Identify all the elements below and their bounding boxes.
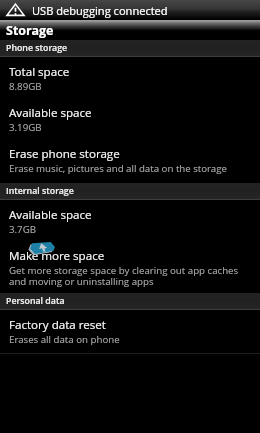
button[interactable]: Available space bbox=[0, 98, 260, 139]
staticText: Internal storage bbox=[6, 185, 74, 197]
staticText: 8.89GB bbox=[9, 80, 42, 93]
staticText: Get more storage space by clearing out a… bbox=[9, 264, 248, 288]
staticText: 3.7GB bbox=[9, 223, 36, 236]
staticText: Erases all data on phone bbox=[9, 333, 120, 346]
staticText: Make more space bbox=[9, 248, 105, 264]
button[interactable]: Factory data reset bbox=[0, 310, 260, 353]
staticText: Total space bbox=[9, 64, 70, 80]
staticText: USB debugging connected bbox=[32, 3, 168, 18]
staticText: Storage bbox=[6, 22, 54, 39]
staticText: Factory data reset bbox=[9, 317, 106, 333]
staticText: Erase music, pictures and all data on th… bbox=[9, 162, 227, 175]
button[interactable]: Make more space bbox=[0, 241, 260, 293]
staticText: Erase phone storage bbox=[9, 146, 120, 162]
button[interactable]: Available space bbox=[0, 200, 260, 241]
staticText: Personal data bbox=[6, 295, 65, 307]
staticText: Phone storage bbox=[6, 42, 68, 54]
button[interactable]: Total space bbox=[0, 57, 260, 98]
staticText: 3.19GB bbox=[9, 121, 42, 134]
staticText: Available space bbox=[9, 207, 92, 223]
button[interactable]: Erase phone storage bbox=[0, 139, 260, 180]
staticText: Available space bbox=[9, 105, 92, 121]
